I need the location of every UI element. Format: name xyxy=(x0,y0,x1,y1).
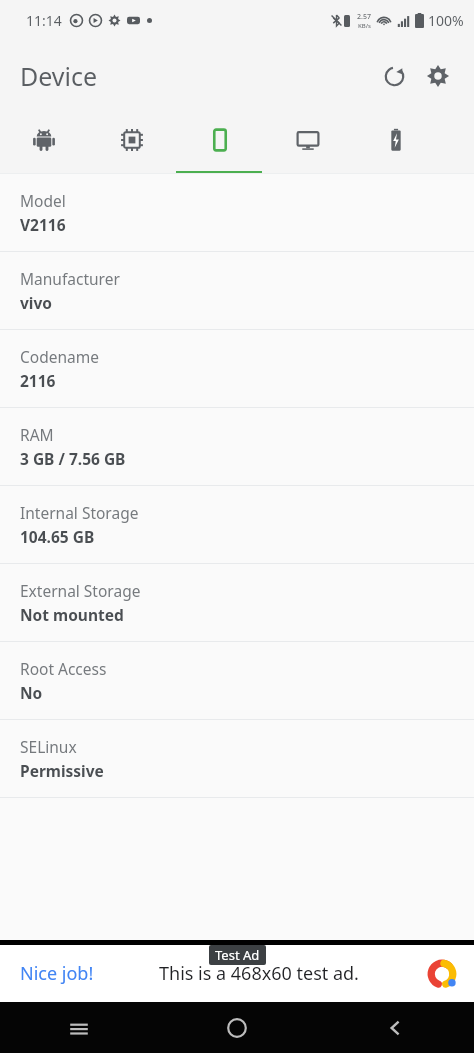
staticText: SELinux xyxy=(20,736,77,757)
button[interactable]: Root Access xyxy=(0,642,474,720)
button[interactable]: Recent apps xyxy=(0,1002,158,1053)
button[interactable]: Manufacturer xyxy=(0,252,474,330)
staticText: Manufacturer xyxy=(20,268,120,289)
staticText: No xyxy=(20,682,43,703)
staticText: External Storage xyxy=(20,580,141,601)
staticText: 11:14 xyxy=(26,11,62,30)
staticText: 104.65 GB xyxy=(20,526,95,547)
button[interactable]: SELinux xyxy=(0,720,474,798)
button[interactable]: Codename xyxy=(0,330,474,408)
staticText: This is a 468x60 test ad. xyxy=(159,961,359,986)
staticText: Model xyxy=(20,190,66,211)
staticText: 100% xyxy=(428,11,464,30)
button[interactable]: RAM xyxy=(0,408,474,486)
button[interactable]: Settings xyxy=(416,54,460,98)
button[interactable]: Battery xyxy=(352,111,440,174)
staticText: V2116 xyxy=(20,214,66,235)
staticText: Device xyxy=(20,59,98,93)
button[interactable]: Refresh xyxy=(372,54,416,98)
staticText: Test Ad xyxy=(215,946,260,964)
staticText: Root Access xyxy=(20,658,107,679)
staticText: RAM xyxy=(20,424,54,445)
staticText: Not mounted xyxy=(20,604,124,625)
staticText: 2.57 xyxy=(357,12,371,22)
staticText: 3 GB / 7.56 GB xyxy=(20,448,126,469)
button[interactable]: Home xyxy=(158,1002,316,1053)
staticText: vivo xyxy=(20,292,53,313)
staticText: KB/s xyxy=(358,22,371,30)
staticText: Permissive xyxy=(20,760,104,781)
button[interactable]: Back xyxy=(316,1002,474,1053)
staticText: Codename xyxy=(20,346,99,367)
staticText: Nice job! xyxy=(20,961,94,986)
button[interactable]: Internal Storage xyxy=(0,486,474,564)
button[interactable]: External Storage xyxy=(0,564,474,642)
button[interactable]: Device xyxy=(176,111,264,174)
button[interactable]: Processor xyxy=(88,111,176,174)
button[interactable]: Display xyxy=(264,111,352,174)
button[interactable]: Model xyxy=(0,174,474,252)
button[interactable]: Android xyxy=(0,111,88,174)
staticText: 2116 xyxy=(20,370,56,391)
button[interactable]: Nice job! xyxy=(0,945,474,1002)
staticText: Internal Storage xyxy=(20,502,139,523)
